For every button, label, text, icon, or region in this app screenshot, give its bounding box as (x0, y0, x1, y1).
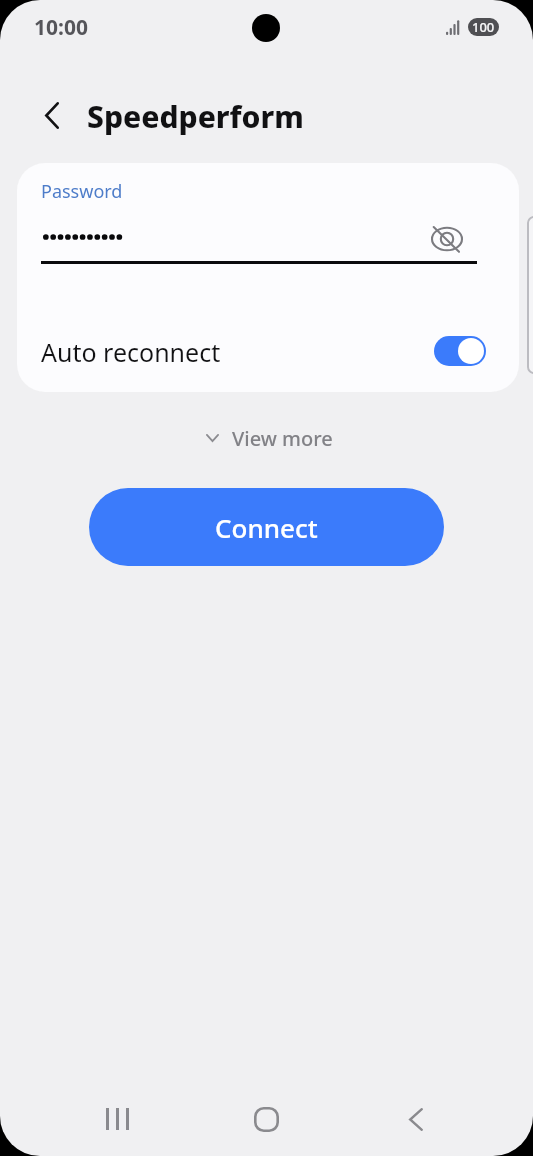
staticText: 10:00 (34, 13, 88, 42)
button[interactable]: Show password (409, 213, 485, 265)
staticText: Auto reconnect (41, 335, 221, 369)
button[interactable]: Home (236, 1089, 296, 1149)
staticText: View more (232, 425, 333, 452)
button[interactable]: Recent apps (87, 1089, 147, 1149)
staticText: Connect (215, 510, 318, 545)
staticText: 100 (472, 18, 495, 36)
staticText: Password (41, 179, 123, 204)
button[interactable]: Connect (89, 488, 444, 566)
button[interactable]: Back (27, 91, 76, 139)
button[interactable]: Auto reconnect (434, 336, 486, 366)
button[interactable]: Back (386, 1089, 446, 1149)
button[interactable]: View more (196, 421, 343, 455)
staticText: Speedperform (87, 96, 304, 137)
